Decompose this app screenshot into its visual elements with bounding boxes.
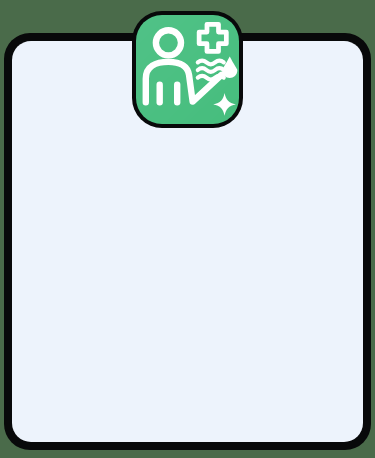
button[interactable] [4,33,371,450]
button[interactable]: Hygiene app icon [132,11,243,128]
